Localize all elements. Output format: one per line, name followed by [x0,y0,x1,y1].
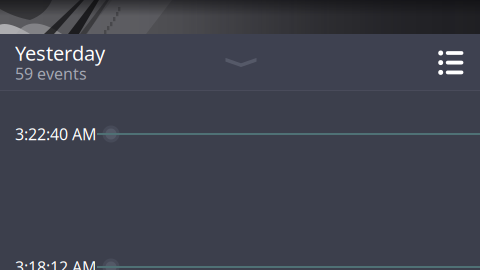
staticText: 59 events [15,63,87,84]
staticText: 3:18:12 AM [15,256,97,270]
staticText: Yesterday [15,40,105,66]
staticText: 3:22:40 AM [15,123,97,145]
button[interactable]: 3:22:40 AM [0,112,480,156]
button[interactable]: Collapse timeline [219,40,263,84]
button[interactable]: Event list [428,40,472,84]
button[interactable]: 3:18:12 AM [0,245,480,270]
